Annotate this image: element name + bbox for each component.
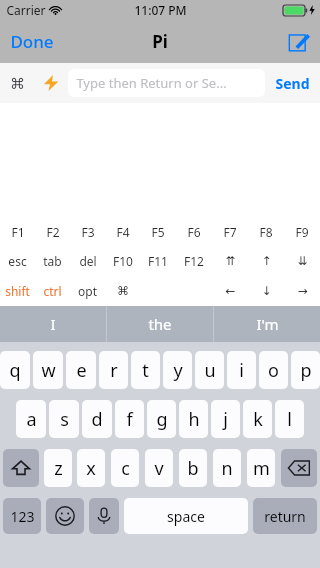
button[interactable]: esc xyxy=(0,246,35,276)
button[interactable]: Compose xyxy=(278,20,320,63)
button[interactable]: space xyxy=(124,498,248,534)
staticText: ⇈ xyxy=(225,254,236,268)
button[interactable]: F6 xyxy=(176,218,212,246)
staticText: c xyxy=(121,456,130,481)
staticText: F8 xyxy=(259,224,273,240)
button[interactable]: r xyxy=(99,351,128,389)
button[interactable]: Shift xyxy=(3,449,39,487)
button[interactable]: i xyxy=(227,351,256,389)
button[interactable]: o xyxy=(259,351,288,389)
staticText: k xyxy=(253,407,263,432)
button[interactable]: Backspace xyxy=(281,449,317,487)
button[interactable]: F9 xyxy=(284,218,320,246)
button[interactable]: e xyxy=(66,351,96,389)
button[interactable]: n xyxy=(213,449,241,487)
staticText: b xyxy=(187,456,199,481)
button[interactable]: Type then Return or Se... xyxy=(68,69,265,97)
button[interactable]: c xyxy=(111,449,139,487)
button[interactable]: j xyxy=(211,400,240,438)
button[interactable]: the xyxy=(107,306,213,342)
button[interactable]: ctrl xyxy=(35,276,70,306)
button[interactable]: F8 xyxy=(248,218,284,246)
staticText: 11:07 PM xyxy=(134,2,187,18)
button[interactable]: ← xyxy=(212,276,248,306)
staticText: F6 xyxy=(187,224,201,240)
button[interactable]: opt xyxy=(70,276,105,306)
button[interactable]: return xyxy=(253,498,317,534)
button[interactable]: k xyxy=(243,400,272,438)
button[interactable]: p xyxy=(291,351,320,389)
staticText: s xyxy=(60,407,69,432)
staticText: ⇊ xyxy=(297,254,308,268)
staticText: z xyxy=(54,456,63,481)
staticText: F4 xyxy=(116,224,130,240)
button[interactable]: y xyxy=(163,351,192,389)
button[interactable]: F10 xyxy=(105,246,140,276)
button[interactable]: u xyxy=(195,351,224,389)
staticText: F2 xyxy=(46,224,60,240)
staticText: n xyxy=(221,456,233,481)
button[interactable]: a xyxy=(16,400,46,438)
staticText: m xyxy=(253,456,270,481)
staticText: u xyxy=(204,358,216,383)
button[interactable]: shift xyxy=(0,276,35,306)
button[interactable]: Emoji xyxy=(46,498,84,534)
staticText: ← xyxy=(225,284,236,298)
staticText: h xyxy=(188,407,200,432)
button[interactable]: g xyxy=(147,400,176,438)
staticText: g xyxy=(156,407,168,432)
staticText: F7 xyxy=(223,224,237,240)
button[interactable]: Send xyxy=(265,74,320,93)
staticText: F3 xyxy=(81,224,95,240)
button[interactable]: F4 xyxy=(105,218,140,246)
staticText: a xyxy=(26,407,37,432)
button[interactable]: → xyxy=(284,276,320,306)
button[interactable]: I'm xyxy=(214,306,320,342)
button[interactable]: F7 xyxy=(212,218,248,246)
button[interactable]: tab xyxy=(35,246,70,276)
button[interactable]: Shortcuts xyxy=(34,66,68,100)
button[interactable]: s xyxy=(49,400,79,438)
button[interactable]: z xyxy=(44,449,72,487)
button[interactable]: F12 xyxy=(176,246,212,276)
button[interactable]: F1 xyxy=(0,218,35,246)
button[interactable]: ↓ xyxy=(248,276,284,306)
button[interactable]: d xyxy=(82,400,112,438)
button[interactable]: del xyxy=(70,246,105,276)
button[interactable]: ↑ xyxy=(248,246,284,276)
button[interactable]: t xyxy=(131,351,160,389)
button[interactable]: F3 xyxy=(70,218,105,246)
button[interactable]: F5 xyxy=(140,218,176,246)
button[interactable]: Done xyxy=(0,20,64,63)
button[interactable]: v xyxy=(145,449,173,487)
staticText: t xyxy=(142,358,149,383)
button[interactable]: Dictate xyxy=(89,498,119,534)
button[interactable]: h xyxy=(179,400,208,438)
staticText: ctrl xyxy=(43,283,62,299)
button[interactable]: b xyxy=(179,449,207,487)
button[interactable]: x xyxy=(77,449,105,487)
staticText: F9 xyxy=(295,224,309,240)
staticText: o xyxy=(268,358,279,383)
button[interactable]: F2 xyxy=(35,218,70,246)
button[interactable]: ⇊ xyxy=(284,246,320,276)
button[interactable]: I xyxy=(0,306,106,342)
staticText: Type then Return or Se... xyxy=(76,74,227,92)
button[interactable]: f xyxy=(115,400,144,438)
button[interactable]: 123 xyxy=(3,498,41,534)
staticText: → xyxy=(297,284,308,298)
button[interactable]: q xyxy=(0,351,30,389)
button[interactable]: F11 xyxy=(140,246,176,276)
button[interactable]: l xyxy=(275,400,304,438)
button[interactable]: ⇈ xyxy=(212,246,248,276)
staticText: Pi xyxy=(152,30,168,53)
button[interactable]: ⌘ xyxy=(105,276,140,306)
staticText: i xyxy=(239,358,244,383)
button[interactable]: w xyxy=(33,351,63,389)
staticText: shift xyxy=(5,283,30,299)
staticText: return xyxy=(264,507,306,526)
button[interactable]: m xyxy=(247,449,275,487)
button[interactable]: Command xyxy=(0,66,34,100)
